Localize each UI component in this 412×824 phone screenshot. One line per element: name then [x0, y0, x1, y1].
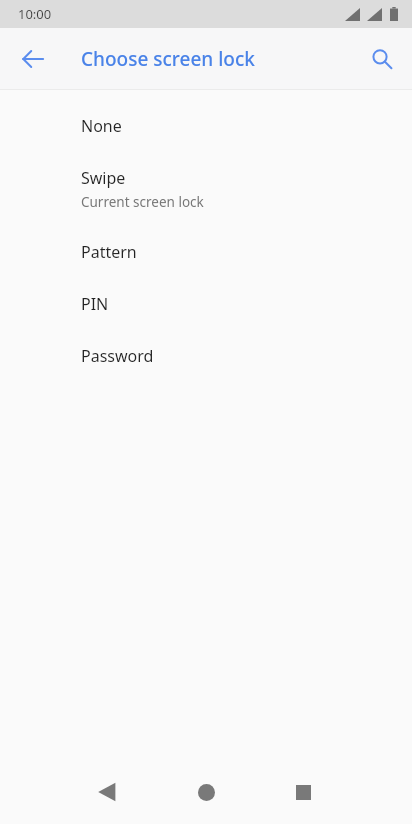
button[interactable]: None: [0, 100, 412, 152]
button[interactable]: Recent apps: [279, 768, 327, 816]
staticText: Current screen lock: [81, 193, 204, 211]
staticText: Password: [81, 345, 154, 367]
staticText: 10:00: [18, 5, 52, 23]
button[interactable]: PIN: [0, 278, 412, 330]
button[interactable]: Back: [83, 768, 131, 816]
button[interactable]: Back: [9, 35, 57, 83]
staticText: PIN: [81, 293, 109, 315]
staticText: Pattern: [81, 241, 137, 263]
button[interactable]: Search: [358, 35, 406, 83]
button[interactable]: Password: [0, 330, 412, 382]
staticText: None: [81, 115, 122, 137]
button[interactable]: Home: [182, 768, 230, 816]
staticText: Swipe: [81, 167, 126, 189]
button[interactable]: Swipe: [0, 152, 412, 226]
button[interactable]: Pattern: [0, 226, 412, 278]
staticText: Choose screen lock: [81, 46, 255, 72]
